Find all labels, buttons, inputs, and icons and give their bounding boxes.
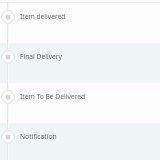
staticText: Item delivered — [20, 12, 66, 21]
button[interactable]: Item delivered — [0, 3, 160, 43]
button[interactable]: Item To Be Delivered — [0, 83, 160, 123]
button[interactable]: Final Delivery — [0, 43, 160, 83]
staticText: Notification — [20, 132, 57, 141]
staticText: Final Delivery — [20, 52, 62, 61]
button[interactable]: Notification — [0, 123, 160, 160]
staticText: Item To Be Delivered — [20, 92, 86, 101]
